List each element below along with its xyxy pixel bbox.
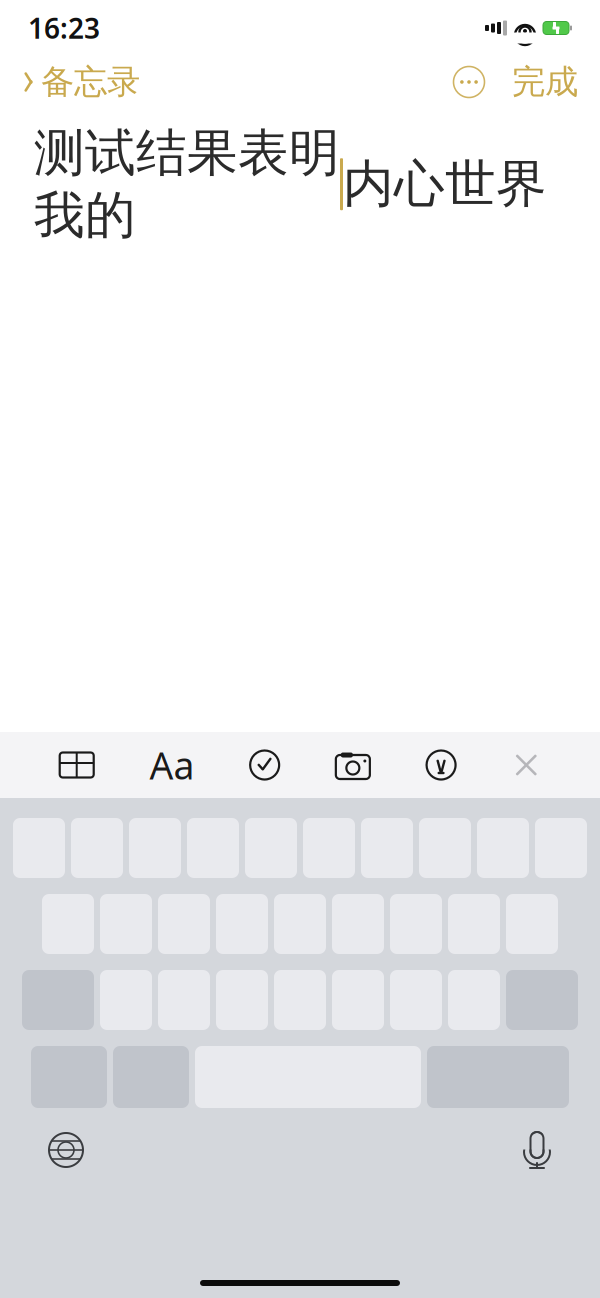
staticText: 16:23 [28,9,100,47]
button[interactable]: 表格 [49,741,105,788]
staticText: 测试结果表明我的 [34,122,340,246]
button[interactable]: 完成 [490,55,580,108]
button[interactable]: 标记 [416,739,467,790]
button[interactable]: 清单 [239,739,290,790]
button[interactable]: 听写 [514,1122,560,1178]
button[interactable]: 关闭 [501,740,551,790]
button[interactable]: 相机 [325,740,381,790]
button[interactable]: 切换键盘 [40,1124,92,1176]
button[interactable]: 备忘录 [20,55,142,108]
staticText: 备忘录 [41,61,140,102]
staticText: 内心世界 [343,153,547,215]
button[interactable]: 更多 [448,61,490,103]
staticText: 完成 [512,61,578,102]
button[interactable]: Aa [139,730,204,800]
staticText: Aa [149,740,194,790]
